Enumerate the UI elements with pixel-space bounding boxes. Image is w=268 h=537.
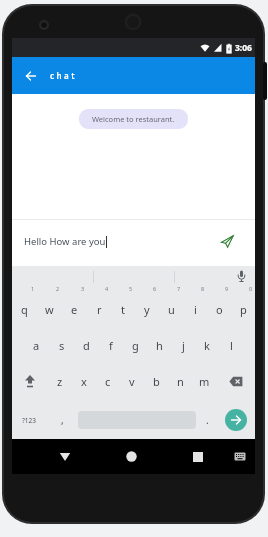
- button[interactable]: a: [24, 333, 49, 357]
- button[interactable]: [225, 409, 247, 431]
- button[interactable]: l: [219, 333, 243, 357]
- staticText: k: [204, 338, 210, 353]
- button[interactable]: w: [37, 297, 62, 321]
- staticText: s: [59, 338, 65, 353]
- staticText: ,: [61, 413, 64, 427]
- button[interactable]: d: [74, 333, 99, 357]
- button[interactable]: h: [147, 333, 171, 357]
- staticText: a: [33, 338, 40, 353]
- button[interactable]: x: [72, 369, 96, 393]
- button[interactable]: j: [171, 333, 195, 357]
- button[interactable]: c: [96, 369, 120, 393]
- staticText: y: [144, 302, 150, 317]
- staticText: c: [105, 374, 111, 389]
- button[interactable]: i: [183, 297, 207, 321]
- button[interactable]: [183, 439, 213, 474]
- button[interactable]: [219, 233, 235, 249]
- staticText: i: [194, 302, 197, 317]
- staticText: 3:06: [235, 42, 252, 54]
- staticText: e: [71, 302, 78, 317]
- staticText: h: [156, 338, 163, 353]
- staticText: 7: [177, 285, 181, 292]
- staticText: b: [153, 374, 160, 389]
- staticText: 0: [249, 285, 253, 292]
- staticText: z: [57, 374, 63, 389]
- button[interactable]: [50, 439, 80, 474]
- button[interactable]: [228, 439, 252, 474]
- button[interactable]: [116, 439, 146, 474]
- button[interactable]: n: [168, 369, 192, 393]
- staticText: Welcome to restaurant.: [92, 114, 175, 124]
- staticText: r: [97, 302, 102, 317]
- button[interactable]: z: [48, 369, 72, 393]
- button[interactable]: y: [135, 297, 159, 321]
- button[interactable]: .: [198, 403, 216, 437]
- button[interactable]: f: [99, 333, 123, 357]
- button[interactable]: m: [192, 369, 216, 393]
- button[interactable]: Welcome to restaurant.: [92, 114, 175, 124]
- staticText: v: [129, 374, 135, 389]
- staticText: 3: [81, 285, 85, 292]
- staticText: 6: [153, 285, 157, 292]
- staticText: ?123: [22, 416, 36, 425]
- staticText: m: [199, 374, 210, 389]
- staticText: w: [45, 302, 54, 317]
- staticText: 8: [201, 285, 205, 292]
- button[interactable]: [12, 57, 50, 94]
- button[interactable]: k: [195, 333, 219, 357]
- staticText: j: [182, 338, 185, 353]
- staticText: chat: [50, 70, 78, 81]
- button[interactable]: e: [62, 297, 87, 321]
- button[interactable]: g: [123, 333, 147, 357]
- staticText: t: [121, 302, 125, 317]
- button[interactable]: r: [87, 297, 111, 321]
- staticText: 4: [105, 285, 109, 292]
- staticText: l: [230, 338, 233, 353]
- staticText: 2: [56, 285, 60, 292]
- button[interactable]: ,: [50, 403, 74, 437]
- staticText: Hello How are you: [24, 235, 106, 248]
- button[interactable]: s: [49, 333, 74, 357]
- button[interactable]: [12, 369, 48, 393]
- button[interactable]: [216, 369, 255, 393]
- staticText: f: [109, 338, 113, 353]
- staticText: p: [240, 302, 247, 317]
- button[interactable]: b: [144, 369, 168, 393]
- button[interactable]: u: [159, 297, 183, 321]
- button[interactable]: v: [120, 369, 144, 393]
- staticText: 9: [225, 285, 229, 292]
- staticText: 5: [129, 285, 133, 292]
- staticText: o: [216, 302, 223, 317]
- button[interactable]: ?123: [12, 403, 46, 437]
- button[interactable]: o: [207, 297, 231, 321]
- staticText: q: [21, 302, 28, 317]
- button[interactable]: p: [231, 297, 255, 321]
- staticText: d: [83, 338, 90, 353]
- staticText: u: [168, 302, 175, 317]
- staticText: g: [132, 338, 139, 353]
- button[interactable]: t: [111, 297, 135, 321]
- staticText: x: [81, 374, 87, 389]
- staticText: 1: [31, 285, 35, 292]
- button[interactable]: q: [12, 297, 37, 321]
- staticText: n: [177, 374, 184, 389]
- staticText: .: [206, 413, 209, 427]
